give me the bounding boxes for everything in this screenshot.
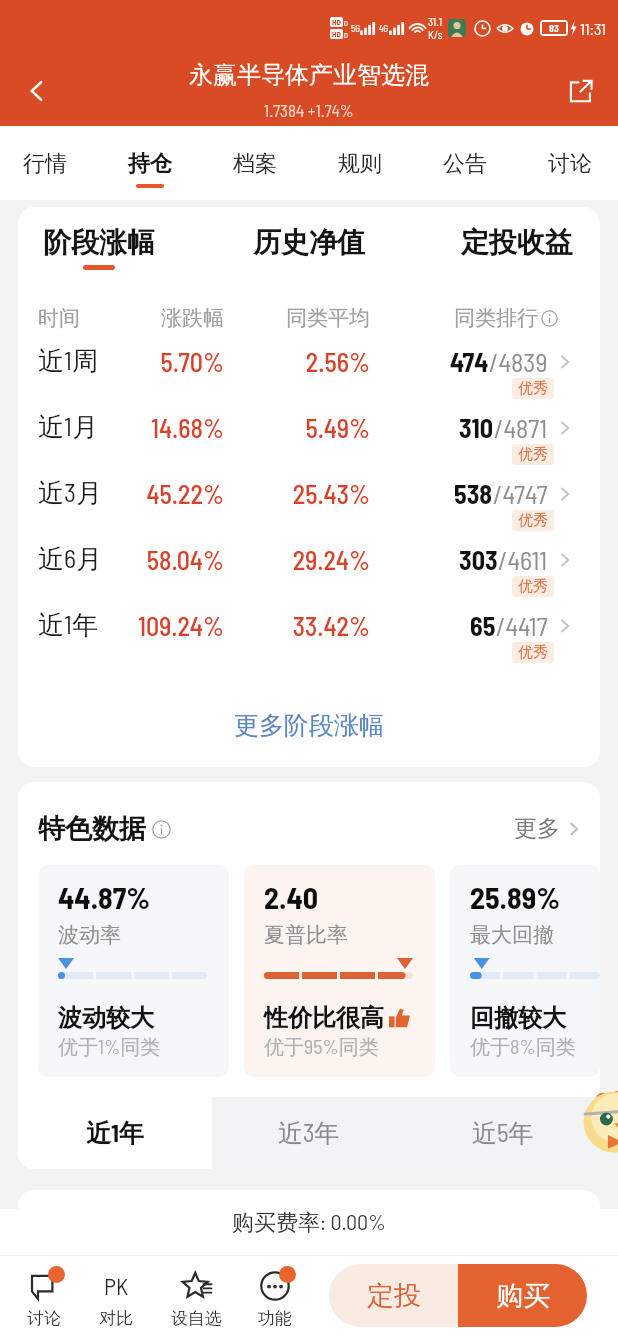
staticText: /4611: [498, 544, 548, 575]
button[interactable]: 近3月: [18, 467, 600, 533]
staticText: 1.7384 +1.74%: [264, 100, 354, 120]
staticText: 83: [549, 22, 559, 34]
staticText: 定投收益: [461, 225, 573, 260]
staticText: 538: [454, 478, 493, 509]
staticText: 29.24%: [18, 544, 370, 575]
button[interactable]: 近1周: [18, 335, 600, 401]
button[interactable]: 更多: [514, 814, 582, 843]
staticText: 2.40: [264, 879, 319, 915]
button[interactable]: 档案: [203, 126, 307, 200]
staticText: 规则: [338, 150, 382, 178]
staticText: 讨论: [548, 150, 592, 178]
staticText: 25.89%: [470, 879, 561, 915]
staticText: /4747: [493, 478, 548, 509]
staticText: 5.49%: [18, 412, 370, 443]
staticText: 波动率: [58, 922, 121, 948]
button[interactable]: 近1年: [18, 1097, 212, 1169]
staticText: 夏普比率: [264, 922, 348, 948]
staticText: 档案: [233, 150, 277, 178]
button[interactable]: 阶段涨幅: [18, 207, 189, 287]
button[interactable]: 历史净值: [219, 207, 399, 287]
staticText: 购买费率: 0.00%: [232, 1208, 387, 1237]
staticText: 回撤较大: [470, 1003, 566, 1033]
staticText: 45.22%: [18, 478, 224, 509]
staticText: 持仓: [128, 150, 172, 178]
button[interactable]: 近5年: [406, 1097, 600, 1169]
staticText: 近1年: [86, 1117, 144, 1149]
staticText: 涨跌幅: [18, 305, 224, 331]
staticText: D: [344, 31, 348, 39]
staticText: /4839: [489, 346, 548, 377]
staticText: 近6月: [38, 542, 103, 576]
staticText: 对比: [99, 1308, 133, 1329]
staticText: 11:31: [580, 19, 606, 38]
staticText: 功能: [258, 1308, 292, 1329]
staticText: K/s: [428, 28, 443, 41]
staticText: 优秀: [518, 643, 548, 662]
staticText: 5.70%: [18, 346, 224, 377]
staticText: 近3年: [278, 1117, 340, 1149]
button[interactable]: Back: [10, 64, 64, 118]
button[interactable]: 更多阶段涨幅: [18, 665, 600, 767]
button[interactable]: 近1年: [18, 599, 600, 665]
staticText: 公告: [443, 150, 487, 178]
staticText: /4871: [494, 412, 548, 443]
staticText: 优秀: [518, 445, 548, 464]
staticText: 近3月: [38, 476, 103, 510]
staticText: 特色数据: [38, 812, 146, 846]
staticText: HD: [332, 29, 341, 39]
staticText: /4417: [496, 610, 548, 641]
staticText: 更多: [514, 814, 560, 843]
button[interactable]: 近3年: [212, 1097, 406, 1169]
staticText: 讨论: [27, 1308, 61, 1329]
staticText: 5G: [351, 23, 360, 34]
staticText: 设自选: [171, 1308, 222, 1329]
staticText: 474: [450, 346, 489, 377]
button[interactable]: 设自选: [157, 1256, 235, 1338]
button[interactable]: 近1月: [18, 401, 600, 467]
staticText: 4G: [379, 23, 389, 34]
staticText: HD: [332, 17, 341, 27]
button[interactable]: 定投收益: [427, 207, 600, 287]
button[interactable]: 规则: [308, 126, 412, 200]
staticText: 303: [459, 544, 498, 575]
button[interactable]: 持仓: [98, 126, 202, 200]
staticText: 波动较大: [58, 1003, 154, 1033]
button[interactable]: 2.40: [244, 865, 435, 1077]
staticText: 近1周: [38, 344, 98, 378]
button[interactable]: Share: [554, 64, 608, 118]
button[interactable]: 购买费率: 0.00%: [0, 1190, 618, 1255]
staticText: 25.43%: [18, 478, 370, 509]
staticText: PK: [104, 1272, 129, 1300]
staticText: 优于8%同类: [470, 1034, 576, 1060]
button[interactable]: 讨论: [5, 1256, 83, 1338]
staticText: 近1年: [38, 608, 98, 642]
button[interactable]: 定投: [329, 1264, 458, 1327]
staticText: 历史净值: [253, 225, 365, 260]
button[interactable]: 功能: [236, 1256, 314, 1338]
staticText: 阶段涨幅: [43, 225, 155, 260]
button[interactable]: 讨论: [518, 126, 618, 200]
button[interactable]: PK: [77, 1256, 155, 1338]
staticText: 优秀: [518, 379, 548, 398]
staticText: 优于95%同类: [264, 1034, 379, 1060]
staticText: 44.87%: [58, 879, 151, 915]
button[interactable]: 25.89%: [450, 865, 600, 1077]
staticText: 性价比很高: [264, 1003, 384, 1033]
button[interactable]: 行情: [0, 126, 97, 200]
staticText: 永赢半导体产业智选混: [189, 60, 429, 90]
staticText: 优秀: [518, 511, 548, 530]
staticText: 2.56%: [18, 346, 370, 377]
button[interactable]: 公告: [413, 126, 517, 200]
button[interactable]: 购买: [458, 1264, 587, 1327]
staticText: 优于1%同类: [58, 1034, 161, 1060]
staticText: 更多阶段涨幅: [234, 710, 384, 741]
button[interactable]: 44.87%: [38, 865, 229, 1077]
staticText: 109.24%: [18, 610, 224, 641]
staticText: 65: [470, 610, 496, 641]
button[interactable]: 近6月: [18, 533, 600, 599]
staticText: 时间: [38, 305, 80, 331]
staticText: 近1月: [38, 410, 98, 444]
staticText: 行情: [23, 150, 67, 178]
staticText: 定投: [367, 1279, 421, 1313]
